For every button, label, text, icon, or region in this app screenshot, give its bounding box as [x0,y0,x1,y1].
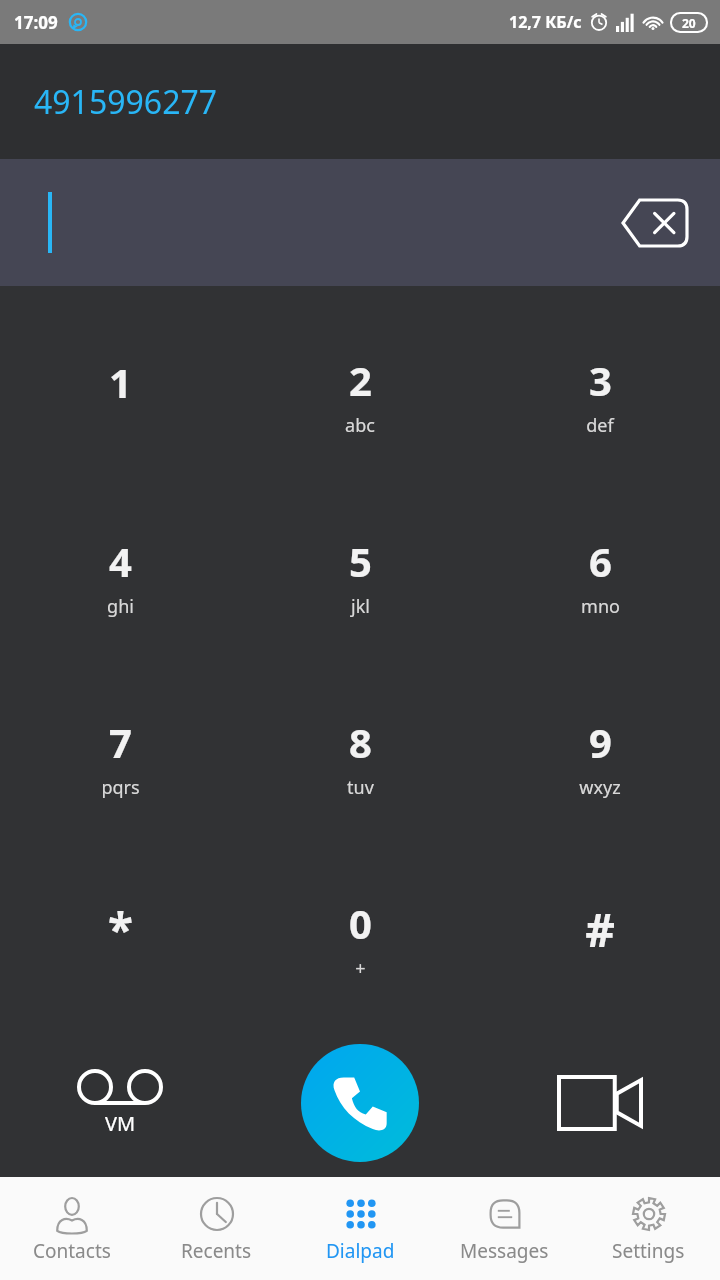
staticText: 12,7 КБ/с [509,11,582,33]
staticText: mno [581,594,620,619]
staticText: 5 [349,534,372,588]
staticText: Contacts [33,1238,111,1264]
button[interactable]: * [0,848,240,1029]
button[interactable]: 9 [480,667,720,848]
button[interactable]: Recents [144,1177,288,1280]
button[interactable]: 0 [240,848,480,1029]
staticText: 17:09 [14,11,58,34]
button[interactable]: # [480,848,720,1029]
staticText: ghi [107,594,134,619]
staticText: 3 [589,353,612,407]
button[interactable]: 1 [0,304,240,486]
button[interactable]: 8 [240,667,480,848]
button[interactable]: 4 [0,486,240,667]
staticText: 0 [349,896,372,950]
button[interactable]: Call [301,1044,419,1162]
staticText: # [585,898,615,961]
button[interactable]: 2 [240,304,480,486]
staticText: pqrs [101,775,140,800]
button[interactable]: Voicemail [0,1029,240,1177]
button[interactable]: Dialpad [288,1177,432,1280]
staticText: 9 [589,715,612,769]
button[interactable]: 7 [0,667,240,848]
staticText: wxyz [579,775,621,800]
button[interactable]: Backspace [618,194,692,252]
staticText: 4915996277 [34,80,218,124]
staticText: * [108,898,133,961]
staticText: abc [345,413,375,438]
staticText: def [586,413,614,438]
button[interactable]: 6 [480,486,720,667]
staticText: VM [105,1110,136,1137]
staticText: tuv [347,775,374,800]
staticText: Settings [612,1238,685,1264]
staticText: Messages [460,1238,549,1264]
button[interactable]: Video call [480,1029,720,1177]
staticText: 1 [109,355,132,409]
staticText: + [355,956,366,981]
button[interactable]: 3 [480,304,720,486]
staticText: Recents [181,1238,252,1264]
staticText: 4 [109,534,132,588]
button[interactable]: 5 [240,486,480,667]
staticText: Dialpad [326,1238,395,1264]
staticText: jkl [351,594,370,619]
staticText: 8 [349,715,372,769]
staticText: 7 [109,715,132,769]
button[interactable]: Contacts [0,1177,144,1280]
button[interactable]: Messages [432,1177,576,1280]
staticText: 2 [349,353,372,407]
button[interactable]: Settings [576,1177,720,1280]
staticText: 20 [682,15,696,31]
staticText: 6 [589,534,612,588]
